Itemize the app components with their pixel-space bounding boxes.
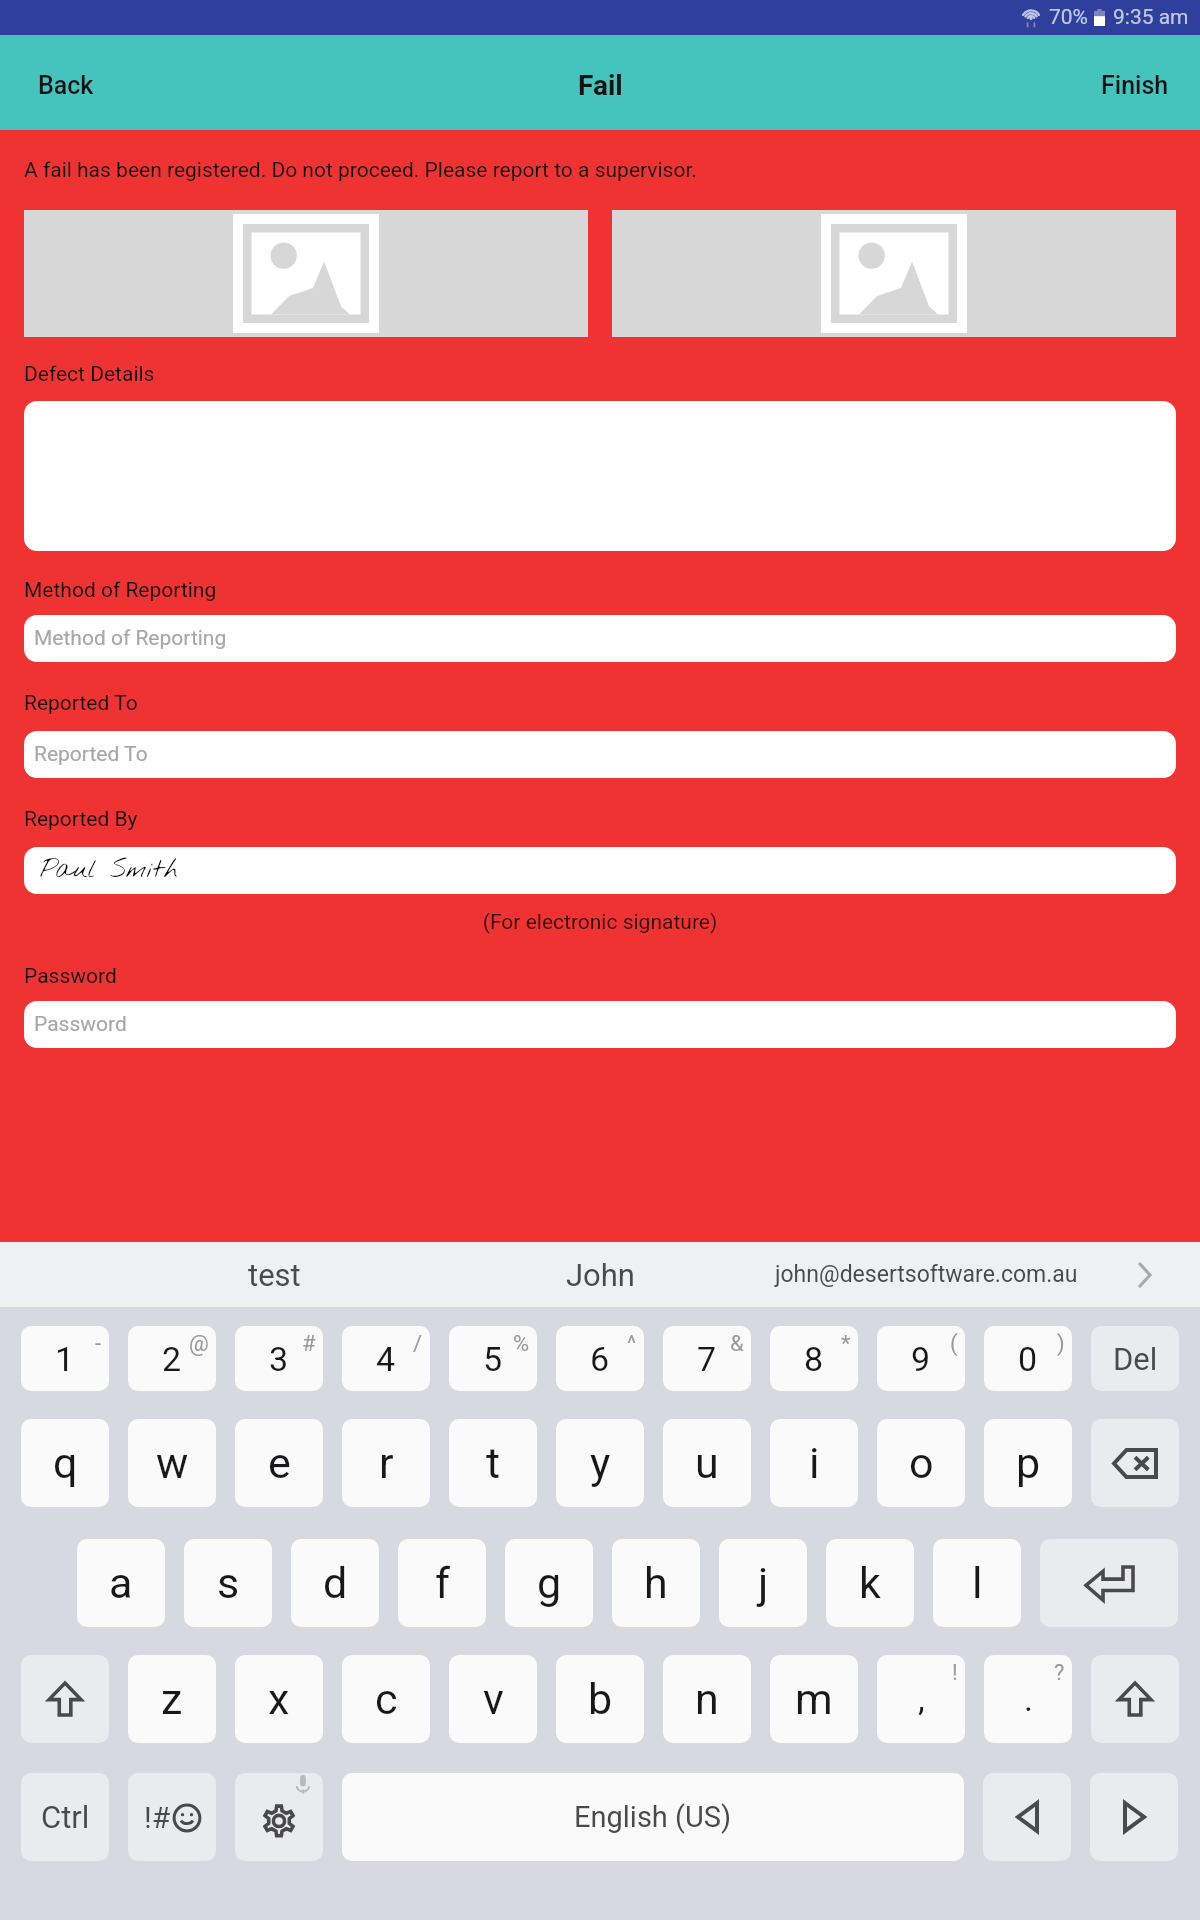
staticText: d xyxy=(323,1558,348,1608)
staticText: (For electronic signature) xyxy=(0,910,1200,935)
staticText: s xyxy=(217,1558,240,1608)
staticText: 9:35 am xyxy=(1113,5,1189,30)
staticText: / xyxy=(413,1331,423,1357)
button[interactable]: r xyxy=(342,1419,430,1507)
button[interactable]: y xyxy=(556,1419,644,1507)
button[interactable]: l xyxy=(933,1539,1021,1627)
button[interactable]: Move cursor right xyxy=(1090,1773,1178,1861)
button[interactable]: 3 xyxy=(235,1326,323,1391)
staticText: Del xyxy=(1113,1341,1158,1377)
button[interactable]: b xyxy=(556,1655,644,1743)
button[interactable]: 7 xyxy=(663,1326,751,1391)
button[interactable]: m xyxy=(770,1655,858,1743)
button[interactable] xyxy=(24,401,1176,551)
button[interactable]: h xyxy=(612,1539,700,1627)
staticText: 7 xyxy=(697,1339,717,1379)
staticText: 70% xyxy=(1049,5,1088,30)
staticText: w xyxy=(156,1438,189,1488)
button[interactable]: backspace xyxy=(1091,1419,1179,1507)
staticText: . xyxy=(1024,1679,1033,1719)
button[interactable]: q xyxy=(21,1419,109,1507)
button[interactable]: Add photo xyxy=(612,210,1176,337)
button[interactable]: 9 xyxy=(877,1326,965,1391)
button[interactable]: john@desertsoftware.com.au xyxy=(763,1242,1089,1307)
staticText: 8 xyxy=(804,1339,824,1379)
button[interactable]: n xyxy=(663,1655,751,1743)
staticText: p xyxy=(1016,1438,1041,1488)
button[interactable]: c xyxy=(342,1655,430,1743)
button[interactable]: test xyxy=(111,1242,437,1307)
button[interactable]: v xyxy=(449,1655,537,1743)
button[interactable]: i xyxy=(770,1419,858,1507)
staticText: * xyxy=(841,1331,851,1357)
staticText: l xyxy=(972,1558,983,1608)
button[interactable]: Symbols and emoji xyxy=(128,1773,216,1861)
button[interactable]: shift xyxy=(21,1655,109,1743)
button[interactable]: Password xyxy=(24,1001,1176,1048)
button[interactable]: j xyxy=(719,1539,807,1627)
button[interactable]: 0 xyxy=(984,1326,1072,1391)
staticText: k xyxy=(859,1558,881,1608)
staticText: Reported To xyxy=(34,742,148,767)
button[interactable]: , xyxy=(877,1655,965,1743)
button[interactable]: z xyxy=(128,1655,216,1743)
button[interactable]: 6 xyxy=(556,1326,644,1391)
button[interactable]: 5 xyxy=(449,1326,537,1391)
staticText: Paul Smith xyxy=(40,853,178,888)
button[interactable]: g xyxy=(505,1539,593,1627)
button[interactable]: t xyxy=(449,1419,537,1507)
button[interactable]: More suggestions xyxy=(1089,1242,1200,1307)
button[interactable]: Move cursor left xyxy=(983,1773,1071,1861)
button[interactable]: Ctrl xyxy=(21,1773,109,1861)
button[interactable]: 8 xyxy=(770,1326,858,1391)
button[interactable]: a xyxy=(77,1539,165,1627)
button[interactable]: shift xyxy=(1091,1655,1179,1743)
staticText: 9 xyxy=(911,1339,931,1379)
staticText: u xyxy=(695,1438,719,1488)
button[interactable]: Keyboard settings xyxy=(235,1773,323,1861)
staticText: t xyxy=(486,1438,501,1488)
button[interactable]: enter xyxy=(1040,1539,1178,1627)
staticText: g xyxy=(537,1558,562,1608)
staticText: v xyxy=(483,1674,504,1724)
button[interactable]: Reported To xyxy=(24,731,1176,778)
staticText: 5 xyxy=(483,1339,503,1379)
button[interactable]: Back xyxy=(0,35,132,130)
button[interactable]: . xyxy=(984,1655,1072,1743)
staticText: English (US) xyxy=(574,1800,732,1834)
button[interactable]: p xyxy=(984,1419,1072,1507)
staticText: 2 xyxy=(162,1339,182,1379)
button[interactable]: Paul Smith xyxy=(24,847,1176,894)
button[interactable]: o xyxy=(877,1419,965,1507)
button[interactable]: e xyxy=(235,1419,323,1507)
button[interactable]: d xyxy=(291,1539,379,1627)
button[interactable]: 1 xyxy=(21,1326,109,1391)
staticText: !# xyxy=(144,1800,171,1835)
button[interactable]: f xyxy=(398,1539,486,1627)
button[interactable]: 4 xyxy=(342,1326,430,1391)
button[interactable]: x xyxy=(235,1655,323,1743)
button[interactable]: Finish xyxy=(1070,35,1200,130)
staticText: Defect Details xyxy=(24,362,155,387)
staticText: b xyxy=(588,1674,613,1724)
staticText: @ xyxy=(189,1331,209,1357)
staticText: q xyxy=(53,1438,78,1488)
staticText: john@desertsoftware.com.au xyxy=(775,1261,1078,1288)
button[interactable]: English (US) xyxy=(342,1773,964,1861)
staticText: A fail has been registered. Do not proce… xyxy=(24,158,697,183)
staticText: , xyxy=(918,1679,925,1719)
button[interactable]: s xyxy=(184,1539,272,1627)
button[interactable]: w xyxy=(128,1419,216,1507)
button[interactable]: 2 xyxy=(128,1326,216,1391)
button[interactable]: u xyxy=(663,1419,751,1507)
staticText: h xyxy=(644,1558,668,1608)
button[interactable]: Del xyxy=(1091,1326,1179,1391)
staticText: j xyxy=(758,1558,769,1608)
staticText: Finish xyxy=(1101,71,1169,100)
staticText: m xyxy=(795,1674,833,1724)
staticText: 6 xyxy=(590,1339,610,1379)
button[interactable]: k xyxy=(826,1539,914,1627)
button[interactable]: John xyxy=(437,1242,763,1307)
button[interactable]: Method of Reporting xyxy=(24,615,1176,662)
button[interactable]: Add photo xyxy=(24,210,588,337)
